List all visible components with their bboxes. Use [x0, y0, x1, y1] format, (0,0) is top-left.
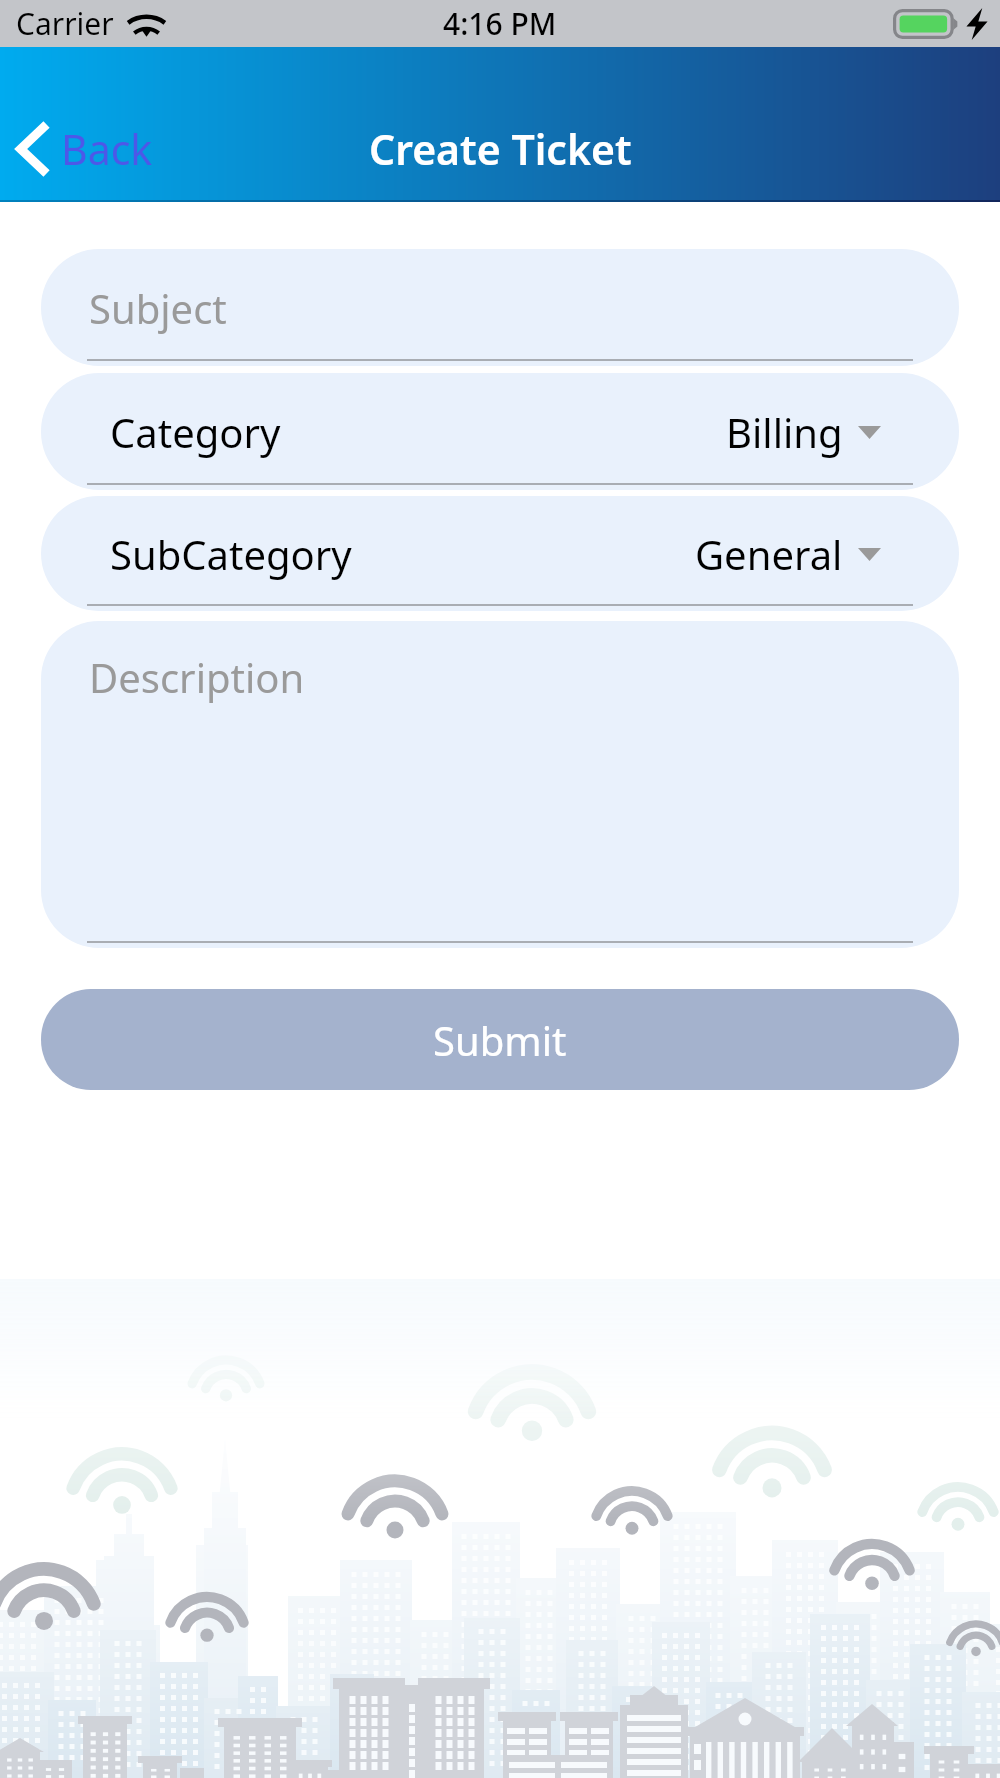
- staticText: Carrier: [16, 3, 114, 44]
- staticText: Description: [89, 650, 305, 704]
- button[interactable]: Subject: [41, 249, 959, 366]
- staticText: Back: [61, 121, 153, 177]
- staticText: Submit: [433, 1013, 567, 1067]
- button[interactable]: Description: [41, 621, 959, 948]
- staticText: Subject: [89, 281, 227, 335]
- staticText: 4:16 PM: [443, 3, 557, 44]
- staticText: SubCategory: [110, 527, 352, 581]
- staticText: Create Ticket: [369, 121, 632, 177]
- staticText: General: [695, 527, 843, 581]
- button[interactable]: SubCategory: [41, 496, 959, 611]
- staticText: Category: [110, 405, 281, 459]
- button[interactable]: Back: [0, 113, 169, 185]
- staticText: Billing: [726, 405, 843, 459]
- button[interactable]: Category: [41, 373, 959, 490]
- other: Back: [16, 124, 47, 174]
- button[interactable]: Submit: [41, 989, 959, 1090]
